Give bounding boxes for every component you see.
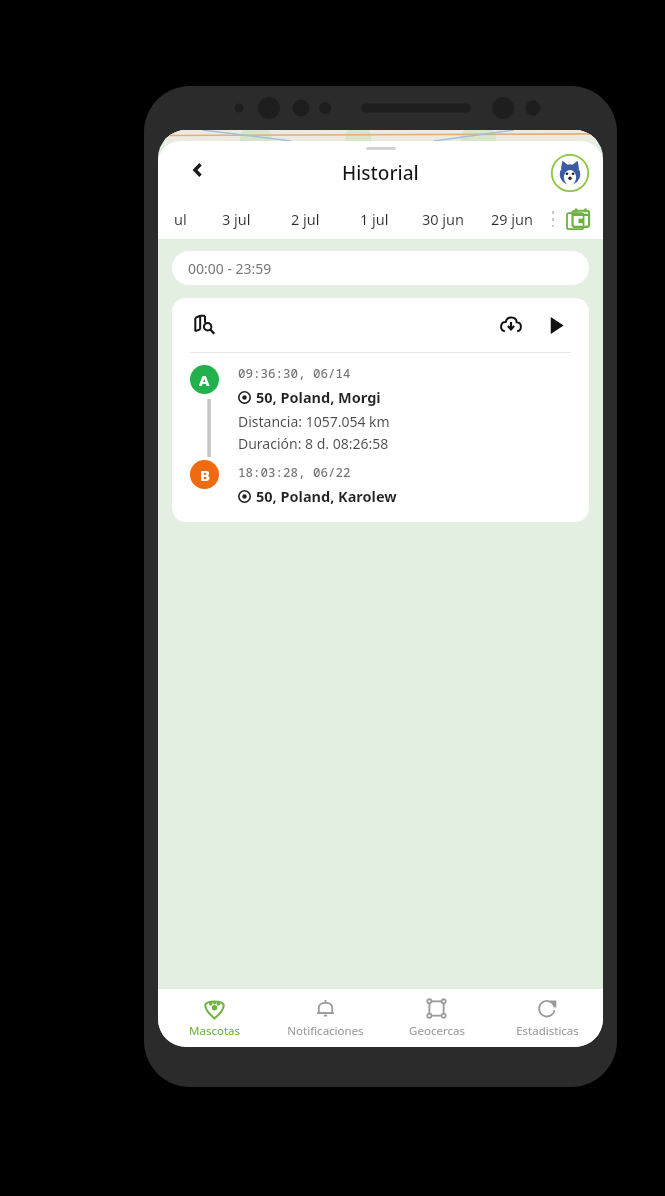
staticText: 50, Poland, Karolew	[256, 486, 397, 506]
staticText: 3 jul	[222, 209, 251, 229]
staticText: ul	[174, 209, 187, 229]
staticText: Historial	[342, 160, 419, 186]
staticText: Geocercas	[409, 1023, 465, 1039]
staticText: Mascotas	[189, 1023, 240, 1039]
button[interactable]: Show on map	[190, 310, 220, 340]
staticText: 00:00 - 23:59	[188, 259, 272, 278]
button[interactable]: 1 jul	[340, 199, 409, 239]
staticText: 29 jun	[491, 209, 534, 229]
button[interactable]: Select date	[563, 204, 593, 234]
button[interactable]: ul	[158, 199, 202, 239]
staticText: A	[199, 370, 210, 390]
staticText: Duración: 8 d. 08:26:58	[238, 434, 389, 453]
button[interactable]: Notificaciones	[270, 989, 381, 1047]
staticText: Notificaciones	[287, 1023, 364, 1039]
button[interactable]: 29 jun	[478, 199, 547, 239]
button[interactable]: Pet profile	[551, 154, 589, 192]
staticText: 18:03:28, 06/22	[238, 464, 351, 481]
button[interactable]: 3 jul	[202, 199, 271, 239]
button[interactable]: Back	[178, 150, 218, 190]
staticText: Distancia: 1057.054 km	[238, 412, 390, 431]
button[interactable]: Geocercas	[381, 989, 492, 1047]
button[interactable]: 00:00 - 23:59	[172, 251, 589, 285]
button[interactable]: 2 jul	[271, 199, 340, 239]
staticText: 2 jul	[291, 209, 320, 229]
staticText: 30 jun	[422, 209, 465, 229]
button[interactable]: Estadisticas	[492, 989, 603, 1047]
button[interactable]: Play route	[541, 310, 571, 340]
button[interactable]: Mascotas	[158, 989, 270, 1047]
staticText: B	[200, 465, 210, 485]
staticText: 09:36:30, 06/14	[238, 365, 351, 382]
button[interactable]: 30 jun	[409, 199, 478, 239]
staticText: 50, Poland, Morgi	[256, 387, 381, 407]
staticText: 1 jul	[360, 209, 389, 229]
button[interactable]: Download	[495, 309, 527, 341]
staticText: Estadisticas	[516, 1023, 579, 1039]
